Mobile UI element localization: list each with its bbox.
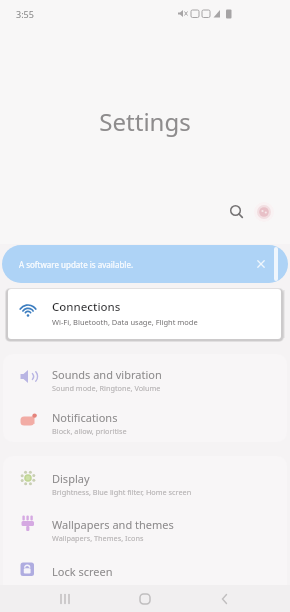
button[interactable]: [3, 548, 287, 594]
button[interactable]: [3, 398, 287, 442]
button[interactable]: [253, 201, 275, 223]
button[interactable]: [40, 585, 90, 612]
button[interactable]: [120, 585, 170, 612]
button[interactable]: Connections: [8, 289, 281, 339]
staticText: 3:55: [16, 8, 34, 20]
staticText: A software update is available.: [19, 259, 134, 270]
staticText: Wallpapers, Themes, Icons: [52, 533, 144, 543]
staticText: Sounds and vibration: [52, 367, 162, 382]
button[interactable]: [227, 202, 247, 222]
button[interactable]: [3, 456, 287, 502]
staticText: Brightness, Blue light filter, Home scre…: [52, 487, 192, 497]
staticText: Wallpapers and themes: [52, 517, 174, 532]
staticText: Display: [52, 471, 90, 486]
staticText: Block, allow, prioritise: [52, 426, 127, 436]
staticText: Sound mode, Ringtone, Volume: [52, 383, 161, 393]
button[interactable]: A software update is available.: [2, 245, 288, 283]
button[interactable]: [3, 502, 287, 548]
staticText: Notifications: [52, 410, 118, 425]
staticText: Lock screen: [52, 564, 113, 579]
staticText: Connections: [52, 299, 121, 315]
staticText: Settings: [0, 105, 290, 138]
button[interactable]: [200, 585, 250, 612]
staticText: Wi-Fi, Bluetooth, Data usage, Flight mod…: [52, 317, 198, 327]
button[interactable]: [3, 354, 287, 398]
